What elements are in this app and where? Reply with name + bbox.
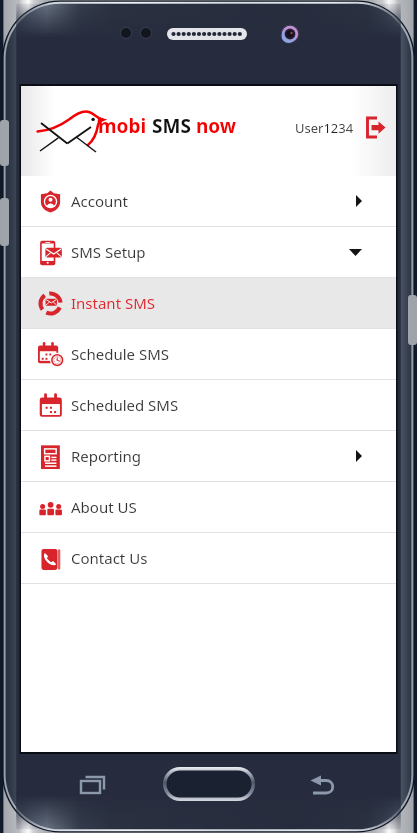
staticText: User1234 [295, 119, 354, 137]
staticText: Scheduled SMS [71, 395, 179, 415]
button[interactable]: Instant SMS [21, 278, 396, 328]
button[interactable]: Back [308, 770, 340, 802]
button[interactable]: Contact Us [21, 533, 396, 583]
button[interactable]: Reporting [21, 431, 396, 481]
staticText: Instant SMS [71, 293, 156, 313]
button[interactable]: Scheduled SMS [21, 380, 396, 430]
button[interactable]: Home [163, 767, 255, 801]
button[interactable]: Schedule SMS [21, 329, 396, 379]
staticText: Contact Us [71, 548, 148, 568]
button[interactable]: About US [21, 482, 396, 532]
other: Log out [364, 116, 387, 139]
staticText: SMS Setup [71, 242, 146, 262]
staticText: Reporting [71, 446, 142, 466]
staticText: About US [71, 497, 137, 517]
button[interactable]: Account [21, 176, 396, 226]
button[interactable]: User1234 [295, 116, 387, 139]
staticText: Schedule SMS [71, 344, 169, 364]
staticText: mobi [98, 113, 152, 139]
button[interactable]: Recents [78, 770, 110, 802]
staticText: SMS [152, 113, 196, 139]
staticText: Account [71, 191, 129, 211]
button[interactable]: SMS Setup [21, 227, 396, 277]
staticText: now [196, 113, 237, 139]
